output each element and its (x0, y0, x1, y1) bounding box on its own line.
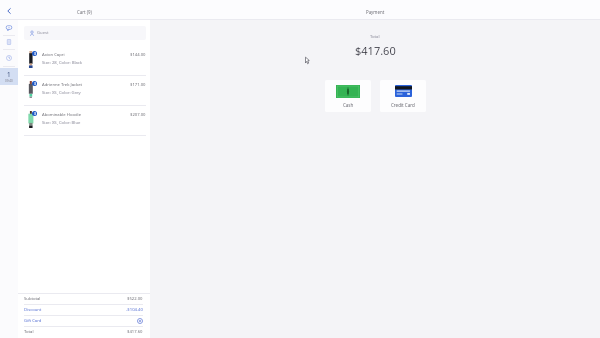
button[interactable]: Back (3, 5, 15, 17)
staticText: $417.60 (355, 43, 396, 58)
button[interactable]: History (0, 49, 18, 66)
staticText: Axion Capri (42, 52, 65, 58)
staticText: $144.00 (130, 52, 146, 58)
staticText: $207.00 (130, 112, 146, 118)
button[interactable]: Guest (24, 26, 146, 40)
staticText: Size: XS, Color: Grey (42, 90, 81, 96)
staticText: Total (24, 329, 34, 335)
staticText: Credit Card (391, 102, 415, 108)
staticText: Size: XS, Color: Blue (42, 120, 81, 126)
button[interactable]: 1 (0, 68, 18, 85)
staticText: Subtotal (24, 296, 41, 302)
staticText: 09:40 (5, 79, 13, 83)
staticText: 1 (7, 70, 11, 78)
button[interactable]: Messages (0, 21, 18, 35)
staticText: Total (370, 34, 380, 40)
button[interactable]: Receipts (0, 35, 18, 49)
button[interactable]: 3 (27, 106, 146, 135)
staticText: Cash (343, 102, 354, 108)
staticText: $522.00 (127, 296, 143, 302)
button[interactable]: 3 (27, 46, 146, 75)
staticText: $171.00 (130, 82, 146, 88)
staticText: Discount (24, 307, 42, 313)
staticText: Gift Card (24, 318, 42, 324)
staticText: Size: 28, Color: Black (42, 60, 83, 66)
staticText: 3 (34, 111, 36, 116)
button[interactable]: 3 (27, 76, 146, 105)
button[interactable]: Credit Card (380, 80, 426, 112)
staticText: Guest (37, 30, 49, 36)
staticText: 3 (34, 81, 36, 86)
staticText: $417.60 (127, 329, 143, 335)
staticText: 3 (34, 51, 36, 56)
staticText: Adrienne Trek Jacket (42, 82, 83, 88)
staticText: -$104.40 (126, 307, 143, 313)
button[interactable]: Cash (325, 80, 371, 112)
staticText: Abominable Hoodie (42, 112, 82, 118)
staticText: Payment (366, 9, 385, 15)
staticText: Cart (9) (77, 9, 92, 15)
